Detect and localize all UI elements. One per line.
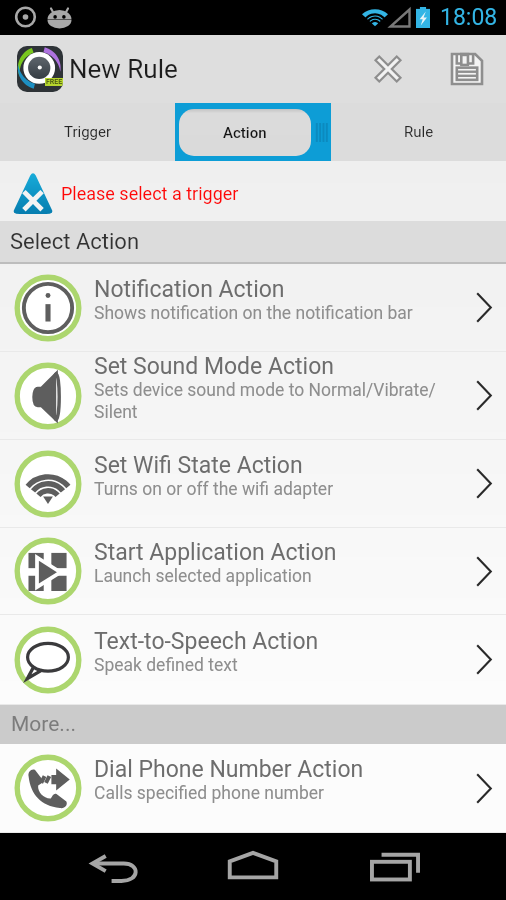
- staticText: Sets device sound mode to Normal/Vibrate…: [94, 380, 436, 422]
- staticText: 18:08: [440, 4, 498, 31]
- staticText: Speak defined text: [94, 655, 238, 676]
- staticText: Set Wifi State Action: [94, 452, 303, 479]
- staticText: Turns on or off the wifi adapter: [94, 479, 334, 500]
- staticText: Text-to-Speech Action: [94, 628, 319, 655]
- button[interactable]: Notification Action: [0, 264, 506, 351]
- staticText: Calls specified phone number: [94, 783, 324, 804]
- staticText: Select Action: [10, 229, 140, 255]
- button[interactable]: Start Application Action: [0, 528, 506, 614]
- staticText: Action: [223, 124, 267, 142]
- staticText: Rule: [404, 123, 434, 141]
- button[interactable]: Rule: [331, 103, 506, 161]
- button[interactable]: Back: [0, 833, 182, 900]
- button[interactable]: Recents: [324, 833, 506, 900]
- button[interactable]: Save: [439, 35, 495, 103]
- staticText: Notification Action: [94, 276, 285, 303]
- button[interactable]: Trigger: [0, 103, 175, 161]
- staticText: Please select a trigger: [61, 183, 239, 204]
- button[interactable]: Text-to-Speech Action: [0, 615, 506, 704]
- staticText: More...: [11, 712, 76, 737]
- button[interactable]: Cancel: [360, 35, 416, 103]
- button[interactable]: Set Wifi State Action: [0, 440, 506, 527]
- staticText: New Rule: [69, 54, 178, 84]
- staticText: Trigger: [64, 123, 112, 141]
- button[interactable]: Action: [175, 103, 331, 161]
- staticText: FREE: [46, 78, 63, 86]
- staticText: Dial Phone Number Action: [94, 756, 364, 783]
- button[interactable]: Set Sound Mode Action: [0, 352, 506, 439]
- staticText: Set Sound Mode Action: [94, 353, 334, 380]
- staticText: Start Application Action: [94, 539, 337, 566]
- staticText: Shows notification on the notification b…: [94, 303, 413, 324]
- staticText: Launch selected application: [94, 566, 312, 587]
- button[interactable]: Home: [182, 833, 324, 900]
- button[interactable]: Dial Phone Number Action: [0, 744, 506, 832]
